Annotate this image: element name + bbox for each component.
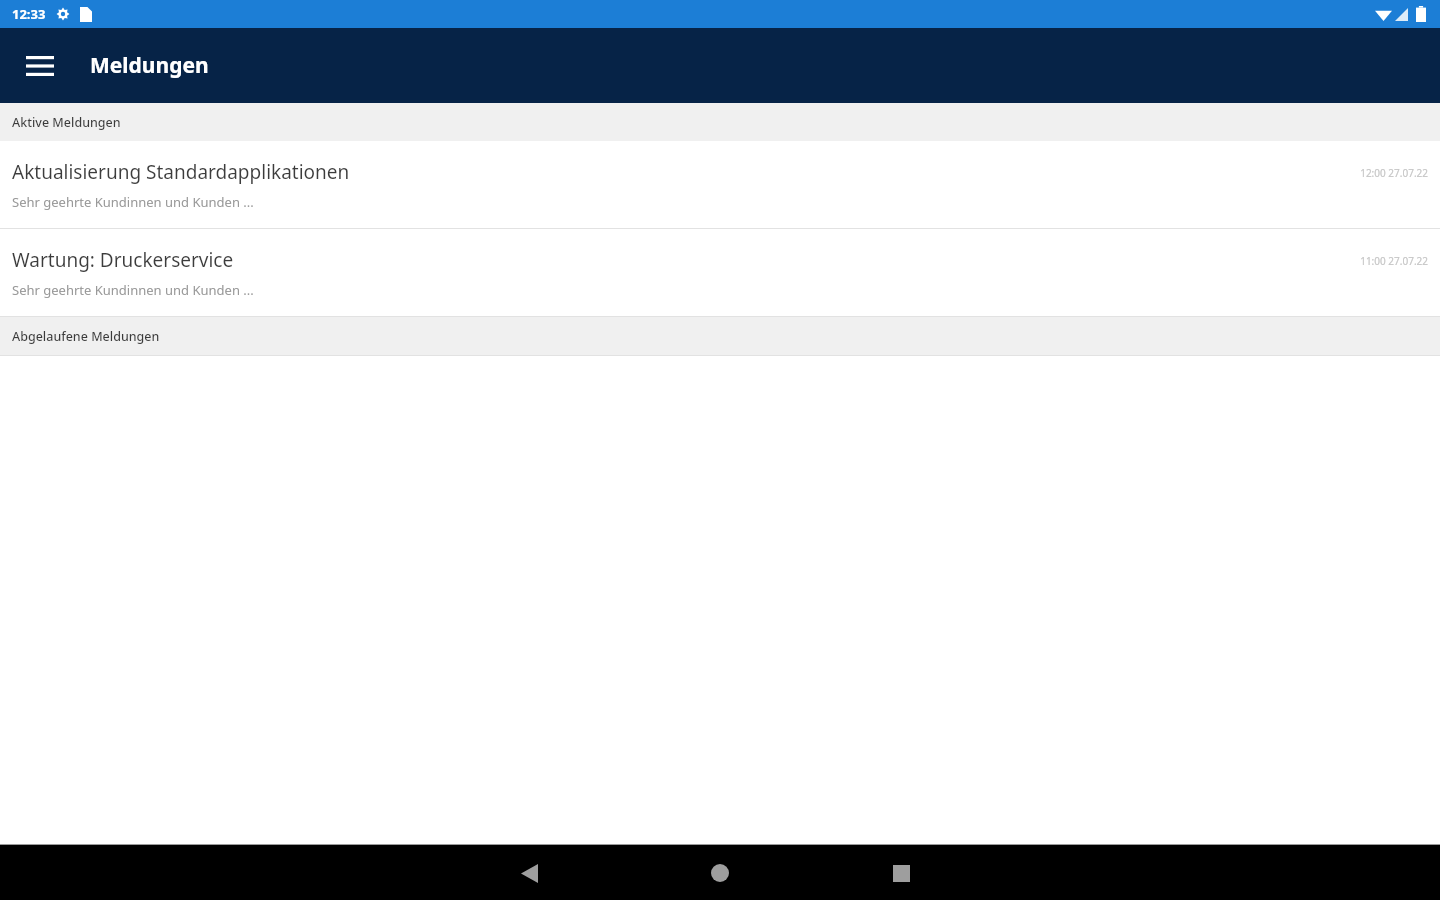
button[interactable]: Back	[505, 849, 553, 897]
staticText: Aktualisierung Standardapplikationen	[12, 159, 350, 185]
button[interactable]: Wartung: Druckerservice	[0, 229, 1440, 316]
staticText: Aktive Meldungen	[12, 114, 121, 131]
staticText: 11:00 27.07.22	[1360, 254, 1428, 268]
staticText: 12:00 27.07.22	[1360, 166, 1428, 180]
button[interactable]: Open navigation menu	[14, 40, 66, 92]
staticText: Wartung: Druckerservice	[12, 247, 234, 273]
staticText: Sehr geehrte Kundinnen und Kunden ...	[12, 281, 254, 299]
staticText: Meldungen	[90, 51, 209, 80]
button[interactable]: Home	[696, 849, 744, 897]
button[interactable]: Aktualisierung Standardapplikationen	[0, 141, 1440, 228]
staticText: 12:33	[12, 5, 46, 23]
staticText: Abgelaufene Meldungen	[12, 328, 160, 345]
staticText: Sehr geehrte Kundinnen und Kunden ...	[12, 193, 254, 211]
button[interactable]: Recent apps	[877, 849, 925, 897]
